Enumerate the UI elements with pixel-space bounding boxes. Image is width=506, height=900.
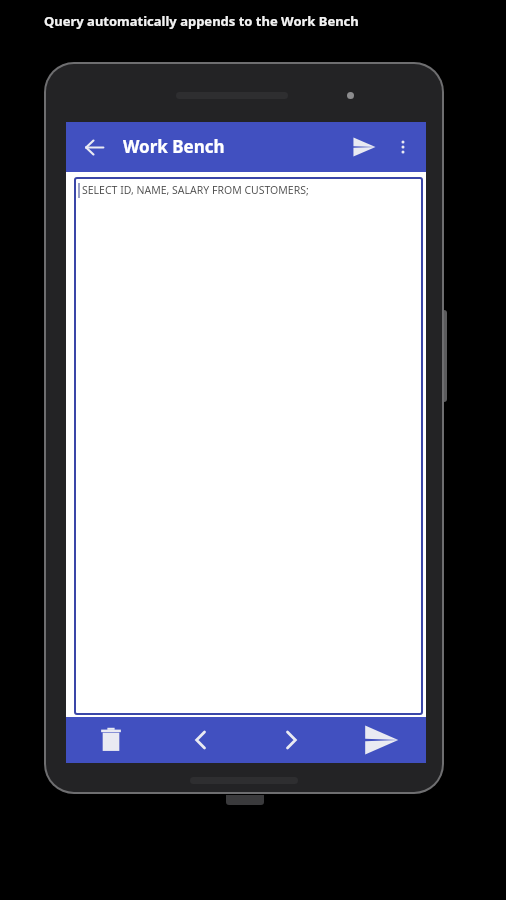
button[interactable]: Back — [74, 127, 114, 167]
staticText: SELECT ID, NAME, SALARY FROM CUSTOMERS; — [82, 183, 309, 197]
button[interactable]: More options — [384, 128, 422, 166]
button[interactable]: Run query — [336, 717, 426, 763]
staticText: Query automatically appends to the Work … — [44, 12, 359, 30]
button[interactable]: Next query — [246, 717, 336, 763]
button[interactable]: SELECT ID, NAME, SALARY FROM CUSTOMERS; — [74, 177, 423, 715]
staticText: Work Bench — [123, 135, 225, 158]
button[interactable]: Clear query — [66, 717, 156, 763]
button[interactable]: Send query — [344, 127, 384, 167]
button[interactable]: Previous query — [156, 717, 246, 763]
